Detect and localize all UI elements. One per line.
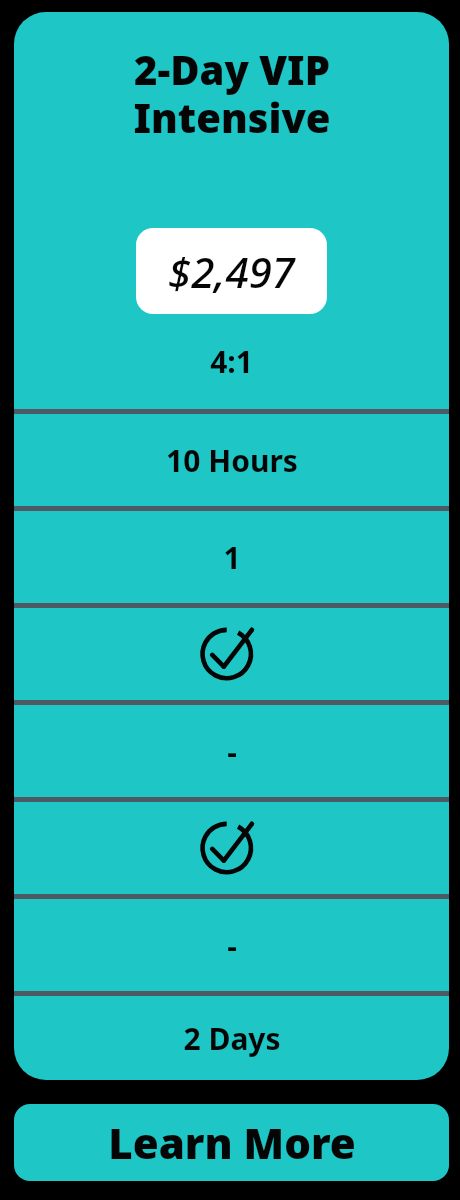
button[interactable]: 1 <box>14 511 449 603</box>
staticText: 2 Days <box>183 1018 281 1059</box>
staticText: 10 Hours <box>166 440 298 481</box>
staticText: 2-Day VIP Intensive <box>133 42 331 144</box>
staticText: $2,497 <box>168 243 295 300</box>
button[interactable]: 10 Hours <box>14 414 449 506</box>
staticText: Learn More <box>108 1114 356 1171</box>
other: Included <box>201 623 263 685</box>
button[interactable]: Included <box>14 608 449 700</box>
staticText: 4:1 <box>210 341 253 382</box>
button[interactable]: 2-Day VIP Intensive <box>14 12 449 409</box>
staticText: - <box>227 925 237 966</box>
button[interactable]: 2 Days <box>14 996 449 1080</box>
staticText: 1 <box>223 537 241 578</box>
button[interactable]: Learn More <box>14 1104 449 1181</box>
button[interactable]: - <box>14 705 449 797</box>
other: Included <box>201 817 263 879</box>
staticText: - <box>227 731 237 772</box>
button[interactable]: Included <box>14 802 449 894</box>
button[interactable]: - <box>14 899 449 991</box>
